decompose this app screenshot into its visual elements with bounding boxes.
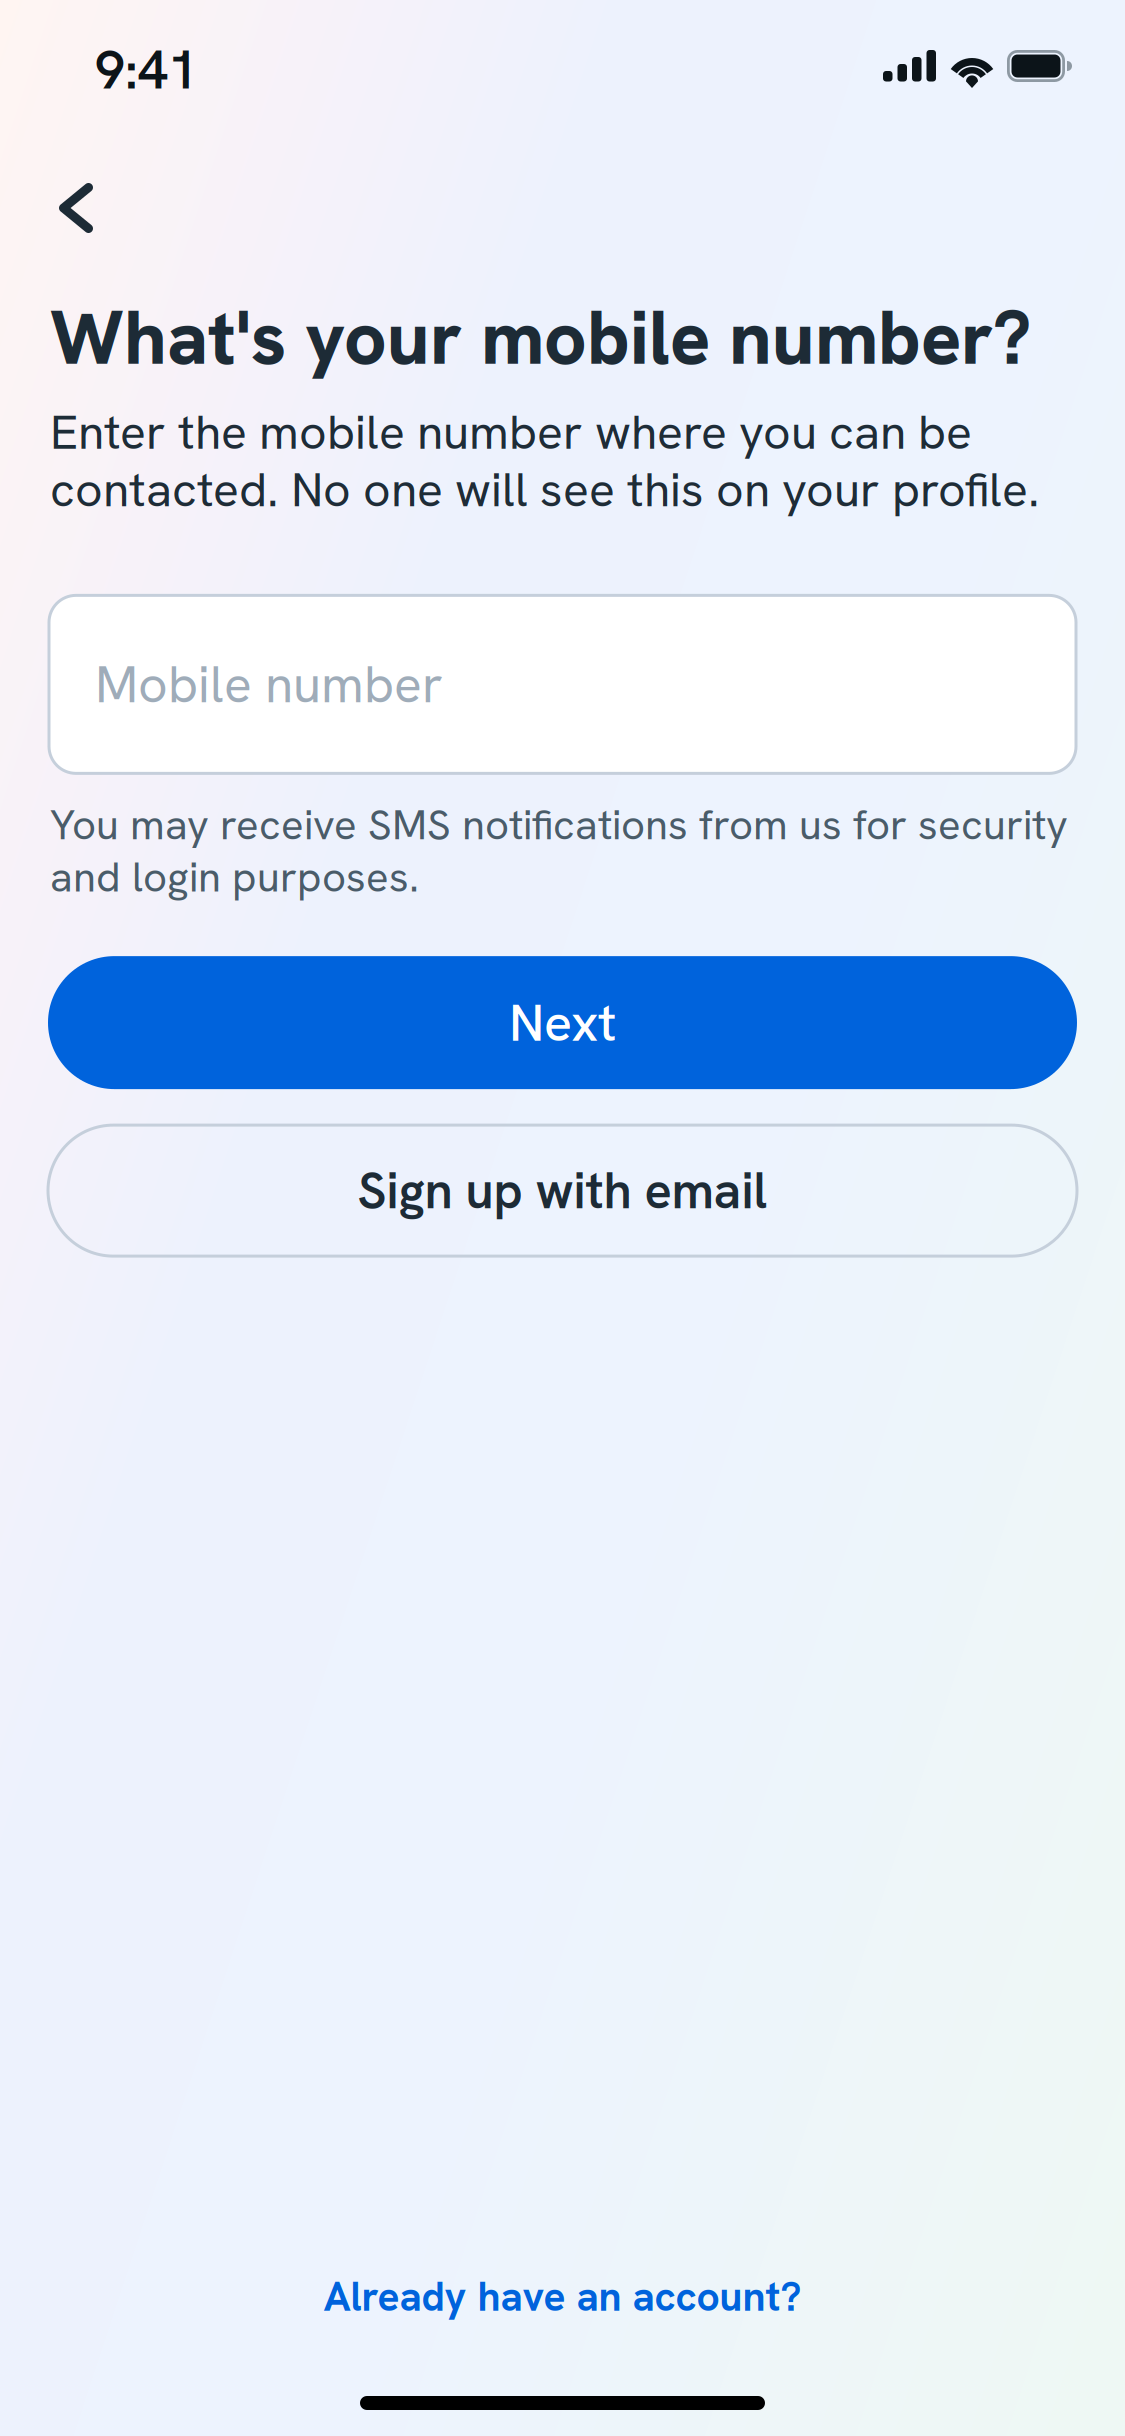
staticText: Enter the mobile number where you can be… [50,403,1040,518]
staticText: 9:41 [95,35,198,105]
button[interactable]: Back [28,160,124,256]
staticText: What's your mobile number? [50,289,1031,386]
staticText: Mobile number [95,651,443,718]
staticText: Already have an account? [323,2270,801,2323]
button[interactable]: Sign up with email [48,1125,1077,1256]
button[interactable]: Next [48,956,1077,1089]
staticText: Next [509,989,616,1056]
staticText: You may receive SMS notifications from u… [50,798,1068,903]
button[interactable]: Already have an account? [305,2252,819,2341]
staticText: Sign up with email [357,1158,767,1224]
